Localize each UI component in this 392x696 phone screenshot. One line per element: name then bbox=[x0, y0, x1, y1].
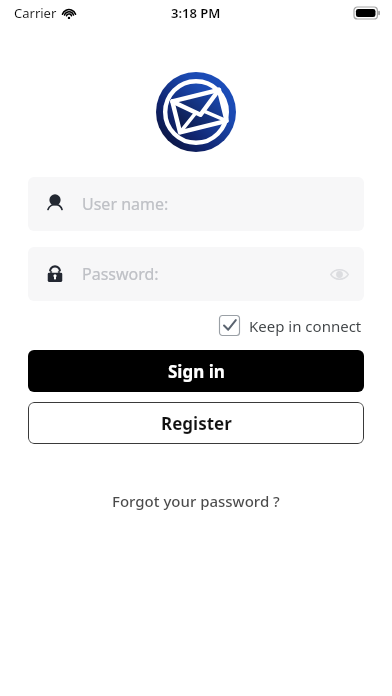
staticText: 3:18 PM bbox=[171, 4, 221, 22]
button[interactable]: Show password bbox=[328, 263, 350, 285]
staticText: Carrier bbox=[14, 4, 57, 22]
staticText: Keep in connect bbox=[249, 316, 362, 336]
button[interactable]: User name: bbox=[28, 177, 364, 231]
staticText: Sign in bbox=[168, 360, 225, 383]
button[interactable]: Register bbox=[28, 402, 364, 444]
button[interactable]: Forgot your password ? bbox=[104, 487, 288, 515]
staticText: Forgot your password ? bbox=[112, 491, 280, 511]
button[interactable]: Password: bbox=[28, 247, 364, 301]
button[interactable]: Sign in bbox=[28, 350, 364, 392]
staticText: User name: bbox=[82, 193, 350, 215]
button[interactable]: Keep in connect bbox=[217, 312, 364, 339]
staticText: Password: bbox=[82, 263, 328, 285]
staticText: Register bbox=[161, 412, 232, 435]
